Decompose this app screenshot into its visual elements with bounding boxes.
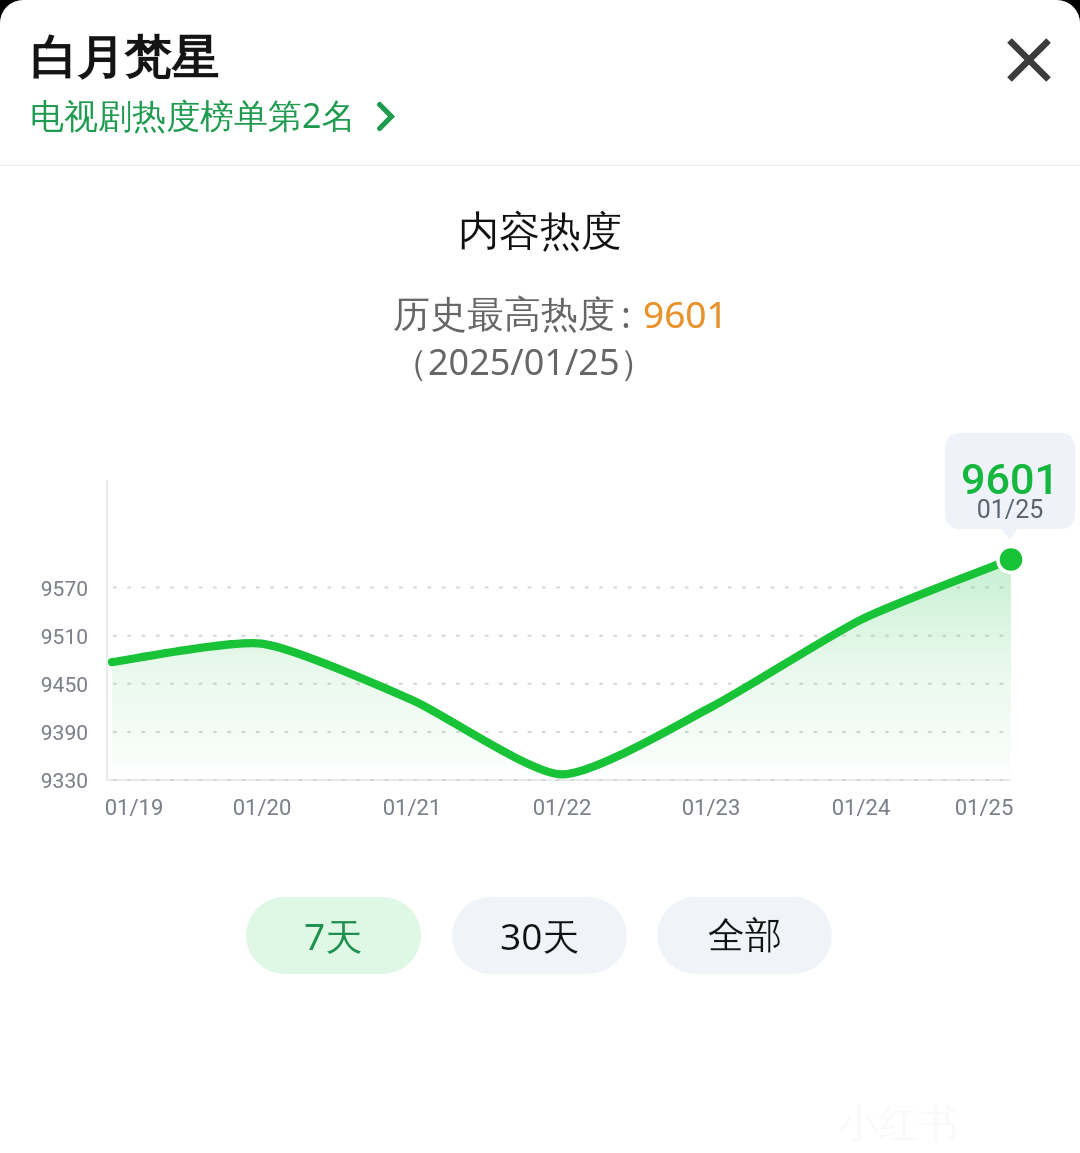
staticText: 9510	[0, 625, 88, 650]
staticText: 9601	[945, 454, 1075, 504]
staticText: 9601	[643, 288, 728, 338]
staticText: 9390	[0, 721, 88, 746]
staticText: 01/20	[217, 795, 307, 821]
staticText: 01/23	[666, 795, 756, 821]
staticText: 9450	[0, 673, 88, 698]
staticText: 30天	[500, 910, 580, 961]
staticText: 01/19	[89, 795, 179, 821]
button[interactable]: 电视剧热度榜单第2名	[30, 92, 396, 138]
staticText: 01/22	[517, 795, 607, 821]
button[interactable]: 30天	[452, 897, 627, 974]
button[interactable]: Close	[993, 24, 1065, 96]
staticText: 白月梵星	[30, 29, 218, 88]
staticText: 内容热度	[0, 206, 1080, 258]
staticText: 01/24	[816, 795, 906, 821]
button[interactable]: 全部	[657, 897, 832, 974]
staticText: 7天	[304, 910, 363, 961]
staticText: :	[621, 288, 631, 338]
staticText: 电视剧热度榜单第2名	[30, 92, 356, 138]
staticText: 全部	[708, 912, 782, 959]
staticText: 01/25	[939, 795, 1029, 821]
button[interactable]: 7天	[246, 897, 421, 974]
staticText: 9330	[0, 769, 88, 794]
staticText: 01/21	[367, 795, 457, 821]
staticText: 历史最高热度	[393, 291, 615, 338]
staticText: （2025/01/25）	[392, 337, 656, 386]
staticText: 9570	[0, 577, 88, 602]
staticText: 01/25	[945, 495, 1075, 524]
